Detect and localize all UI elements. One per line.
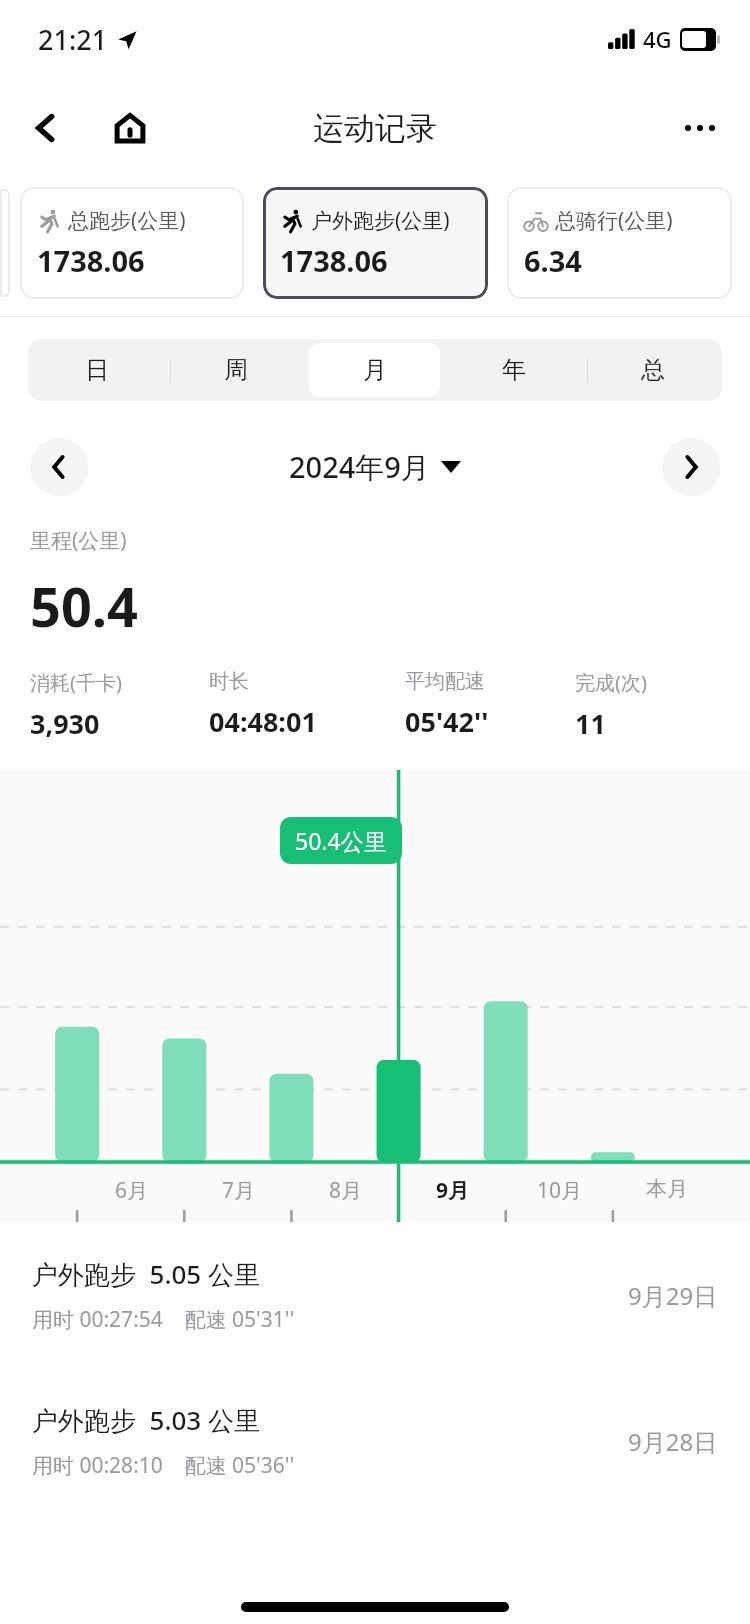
staticText: 总 [641, 355, 665, 385]
staticText: 9月29日 [628, 1279, 718, 1312]
staticText: 71 [684, 29, 703, 51]
staticText: 平均配速 [405, 669, 485, 694]
staticText: 用时 00:27:54 配速 05'31'' [32, 1305, 295, 1334]
staticText: 月 [363, 355, 387, 385]
button[interactable]: 户外跑步 5.05 公里 [0, 1222, 750, 1368]
button[interactable]: 户外跑步(公里) [263, 187, 488, 299]
button[interactable]: Home [104, 102, 156, 154]
staticText: 6月 [115, 1176, 149, 1205]
staticText: 8月 [329, 1176, 363, 1205]
staticText: 总跑步(公里) [68, 206, 186, 235]
staticText: 05'42'' [405, 703, 489, 740]
staticText: 1738.06 [280, 241, 388, 280]
staticText: 50.4 [30, 569, 138, 643]
staticText: 21:21 [38, 21, 108, 58]
staticText: 时长 [209, 669, 249, 694]
staticText: 04:48:01 [209, 703, 317, 740]
staticText: 9月28日 [628, 1425, 718, 1458]
staticText: 完成(次) [575, 669, 647, 696]
button[interactable]: 年 [448, 343, 579, 397]
button[interactable]: Back [20, 102, 72, 154]
staticText: 10月 [537, 1176, 583, 1205]
staticText: 4G [643, 24, 672, 54]
button[interactable]: 总骑行(公里) [507, 187, 732, 299]
staticText: 周 [224, 355, 248, 385]
staticText: 户外跑步(公里) [311, 206, 450, 235]
staticText: 2024年9月 [289, 447, 430, 487]
staticText: 11 [575, 705, 606, 742]
button[interactable]: 总 [587, 343, 718, 397]
staticText: 消耗(千卡) [30, 669, 122, 696]
staticText: 户外跑步 5.05 公里 [32, 1256, 260, 1292]
button[interactable]: Next month [662, 438, 720, 496]
staticText: 7月 [222, 1176, 256, 1205]
staticText: 6.34 [524, 241, 582, 280]
staticText: 用时 00:28:10 配速 05'36'' [32, 1451, 295, 1480]
staticText: 年 [502, 355, 526, 385]
button[interactable]: 户外跑步 5.03 公里 [0, 1368, 750, 1514]
staticText: 户外跑步 5.03 公里 [32, 1402, 260, 1438]
button[interactable]: 周 [170, 343, 301, 397]
staticText: 50.4公里 [295, 825, 387, 856]
staticText: 本月 [646, 1176, 688, 1202]
staticText: 9月 [436, 1176, 470, 1205]
staticText: 运动记录 [313, 109, 437, 148]
staticText: 3,930 [30, 705, 100, 742]
staticText: 总骑行(公里) [555, 206, 673, 235]
button[interactable]: More options [674, 102, 726, 154]
staticText: 1738.06 [37, 241, 145, 280]
button[interactable]: 月 [309, 343, 440, 397]
button[interactable]: 日 [32, 343, 162, 397]
staticText: 里程(公里) [30, 526, 127, 555]
staticText: 日 [85, 355, 109, 385]
button[interactable]: 总跑步(公里) [20, 187, 244, 299]
button[interactable]: Previous month [30, 438, 88, 496]
